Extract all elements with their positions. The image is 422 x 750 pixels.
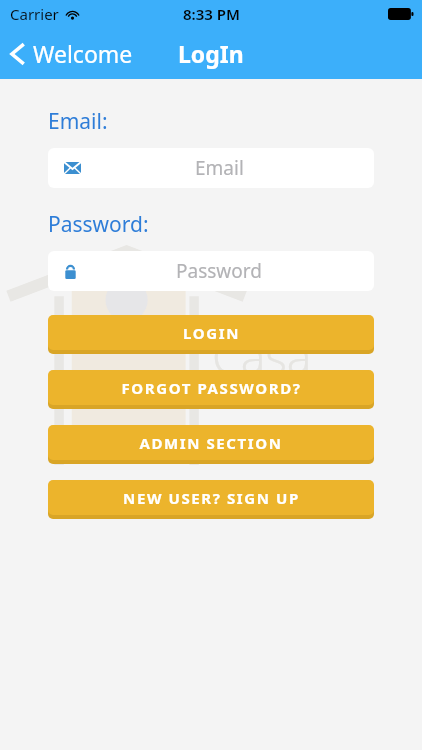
button[interactable]: Email — [48, 148, 374, 188]
staticText: FORGOT PASSWORD? — [121, 378, 302, 398]
staticText: Email: — [48, 107, 108, 136]
staticText: Welcome — [33, 38, 133, 69]
staticText: LogIn — [178, 38, 244, 69]
staticText: LOGIN — [183, 323, 240, 343]
staticText: ADMIN SECTION — [139, 433, 283, 453]
staticText: Password: — [48, 210, 149, 239]
staticText: Casa — [212, 325, 312, 388]
staticText: 8:33 PM — [183, 4, 240, 24]
button[interactable]: NEW USER? SIGN UP — [48, 480, 374, 515]
button[interactable]: LOGIN — [48, 315, 374, 350]
button[interactable]: ADMIN SECTION — [48, 425, 374, 460]
staticText: Email — [195, 155, 244, 181]
staticText: Carrier — [10, 4, 59, 24]
button[interactable]: Password — [48, 251, 374, 291]
staticText: Password — [176, 258, 262, 284]
staticText: NEW USER? SIGN UP — [123, 488, 300, 508]
other: Back — [10, 41, 26, 67]
button[interactable]: FORGOT PASSWORD? — [48, 370, 374, 405]
button[interactable]: Back — [0, 32, 145, 75]
